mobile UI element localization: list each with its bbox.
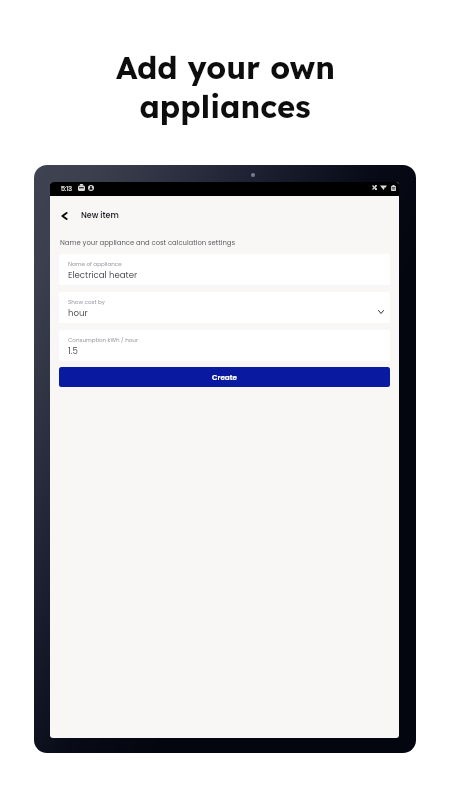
staticText: New item (81, 210, 119, 221)
staticText: Add your own (116, 48, 335, 87)
button[interactable]: Consumption kWh / hour (59, 330, 390, 361)
button[interactable]: Name of appliance (59, 254, 390, 285)
staticText: 1.5 (68, 345, 78, 357)
staticText: appliances (139, 87, 311, 126)
staticText: Name your appliance and cost calculation… (60, 238, 236, 248)
button[interactable]: New item (81, 209, 119, 222)
staticText: Show cost by (68, 298, 105, 306)
staticText: Name of appliance (68, 260, 122, 268)
button[interactable]: Back (58, 209, 71, 222)
button[interactable]: Create (59, 367, 390, 387)
staticText: hour (68, 307, 88, 319)
staticText: Consumption kWh / hour (68, 336, 138, 344)
staticText: 5:13 (61, 184, 73, 193)
button[interactable]: Show cost by (59, 292, 390, 323)
staticText: Electrical heater (68, 269, 138, 281)
staticText: Create (212, 372, 237, 382)
